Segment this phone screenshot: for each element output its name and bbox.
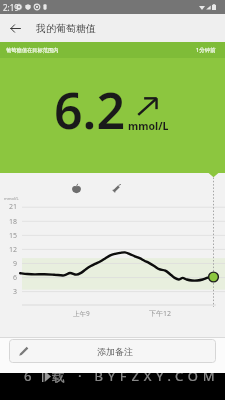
staticText: 21	[0, 202, 17, 212]
staticText: 上午9	[73, 309, 90, 318]
staticText: 15	[0, 231, 17, 241]
staticText: 我的葡萄糖值	[36, 22, 96, 35]
staticText: 载 · BYFZXY.COM	[52, 367, 220, 385]
staticText: 6	[24, 367, 37, 385]
staticText: mmol/L	[128, 119, 169, 133]
staticText: 1分钟前	[196, 46, 216, 54]
staticText: 2:19	[3, 2, 19, 13]
staticText: 葡萄糖值在目标范围内	[6, 47, 59, 54]
staticText: 9	[0, 259, 17, 269]
staticText: 添加备注	[97, 346, 133, 357]
staticText: 6	[0, 273, 17, 283]
button[interactable]: 添加备注	[9, 339, 216, 363]
staticText: 12	[0, 245, 17, 255]
staticText: mmol/L	[4, 196, 19, 201]
staticText: 下午12	[149, 309, 172, 319]
staticText: 3	[0, 287, 17, 297]
staticText: 6.2	[54, 76, 125, 144]
staticText: 18	[0, 217, 17, 227]
button[interactable]: Back	[3, 16, 27, 40]
